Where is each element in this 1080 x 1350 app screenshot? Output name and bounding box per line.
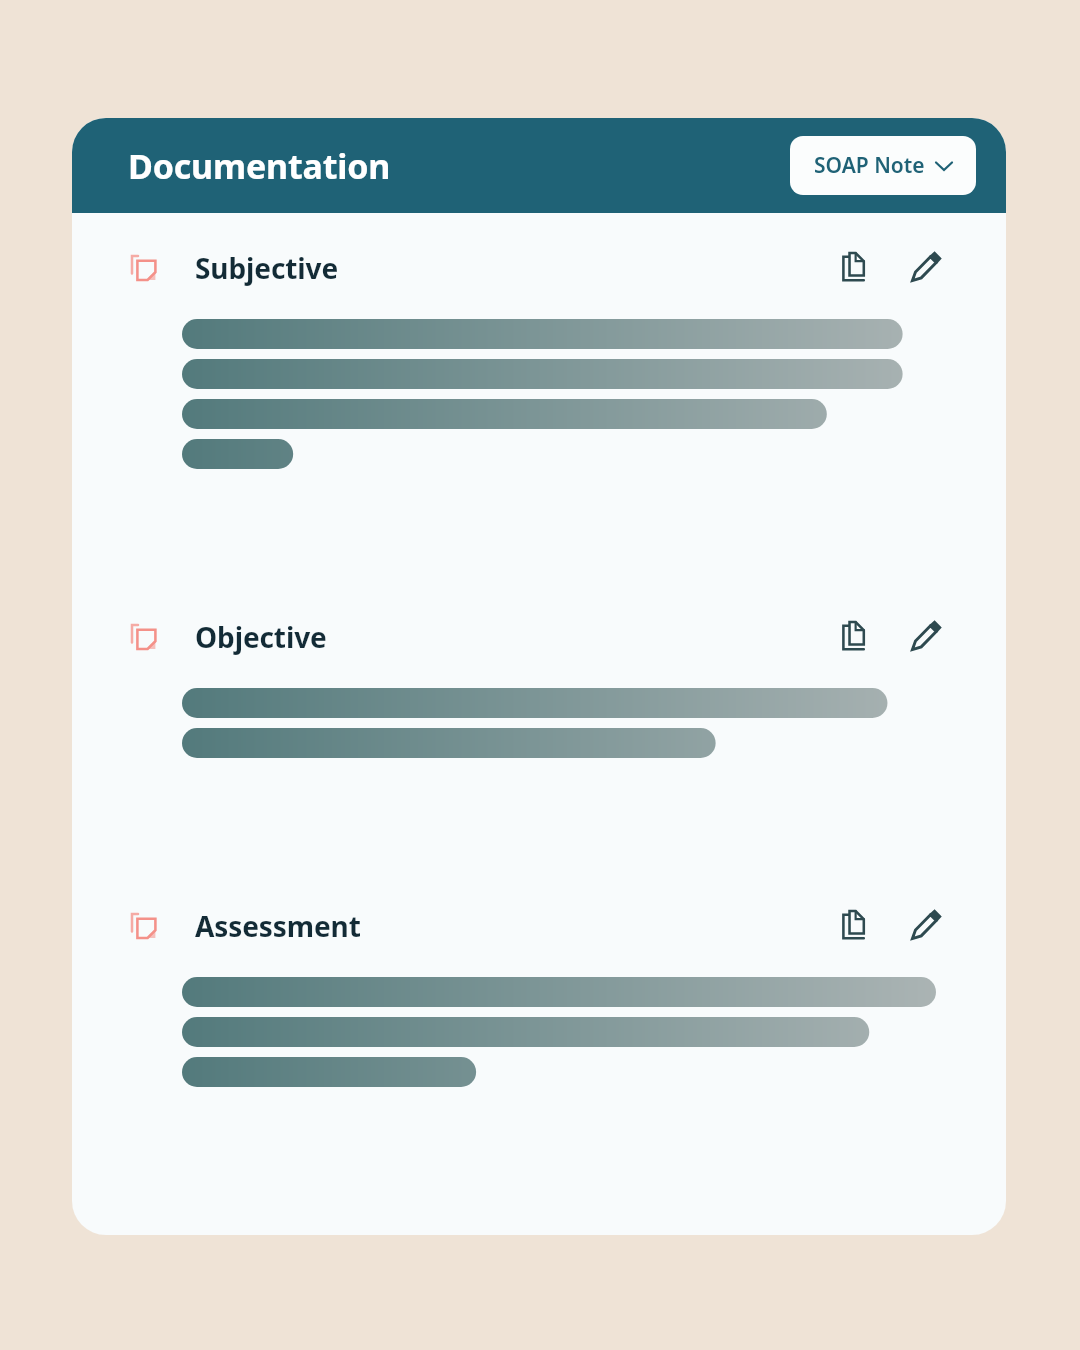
button[interactable]: SOAP Note	[790, 136, 976, 195]
button[interactable]: Edit Assessment	[902, 903, 948, 949]
other: Objective section	[129, 622, 159, 652]
staticText: Documentation	[128, 143, 391, 189]
button[interactable]: Copy Objective	[834, 614, 880, 660]
button[interactable]: Copy Assessment	[834, 903, 880, 949]
other: Subjective section	[129, 253, 159, 283]
staticText: Subjective	[195, 249, 339, 287]
button[interactable]: Edit Objective	[902, 614, 948, 660]
staticText: SOAP Note	[814, 151, 925, 180]
staticText: Assessment	[195, 907, 361, 945]
button[interactable]: Edit Subjective	[902, 245, 948, 291]
other: Assessment section	[129, 911, 159, 941]
staticText: Objective	[195, 618, 327, 656]
button[interactable]: Copy Subjective	[834, 245, 880, 291]
